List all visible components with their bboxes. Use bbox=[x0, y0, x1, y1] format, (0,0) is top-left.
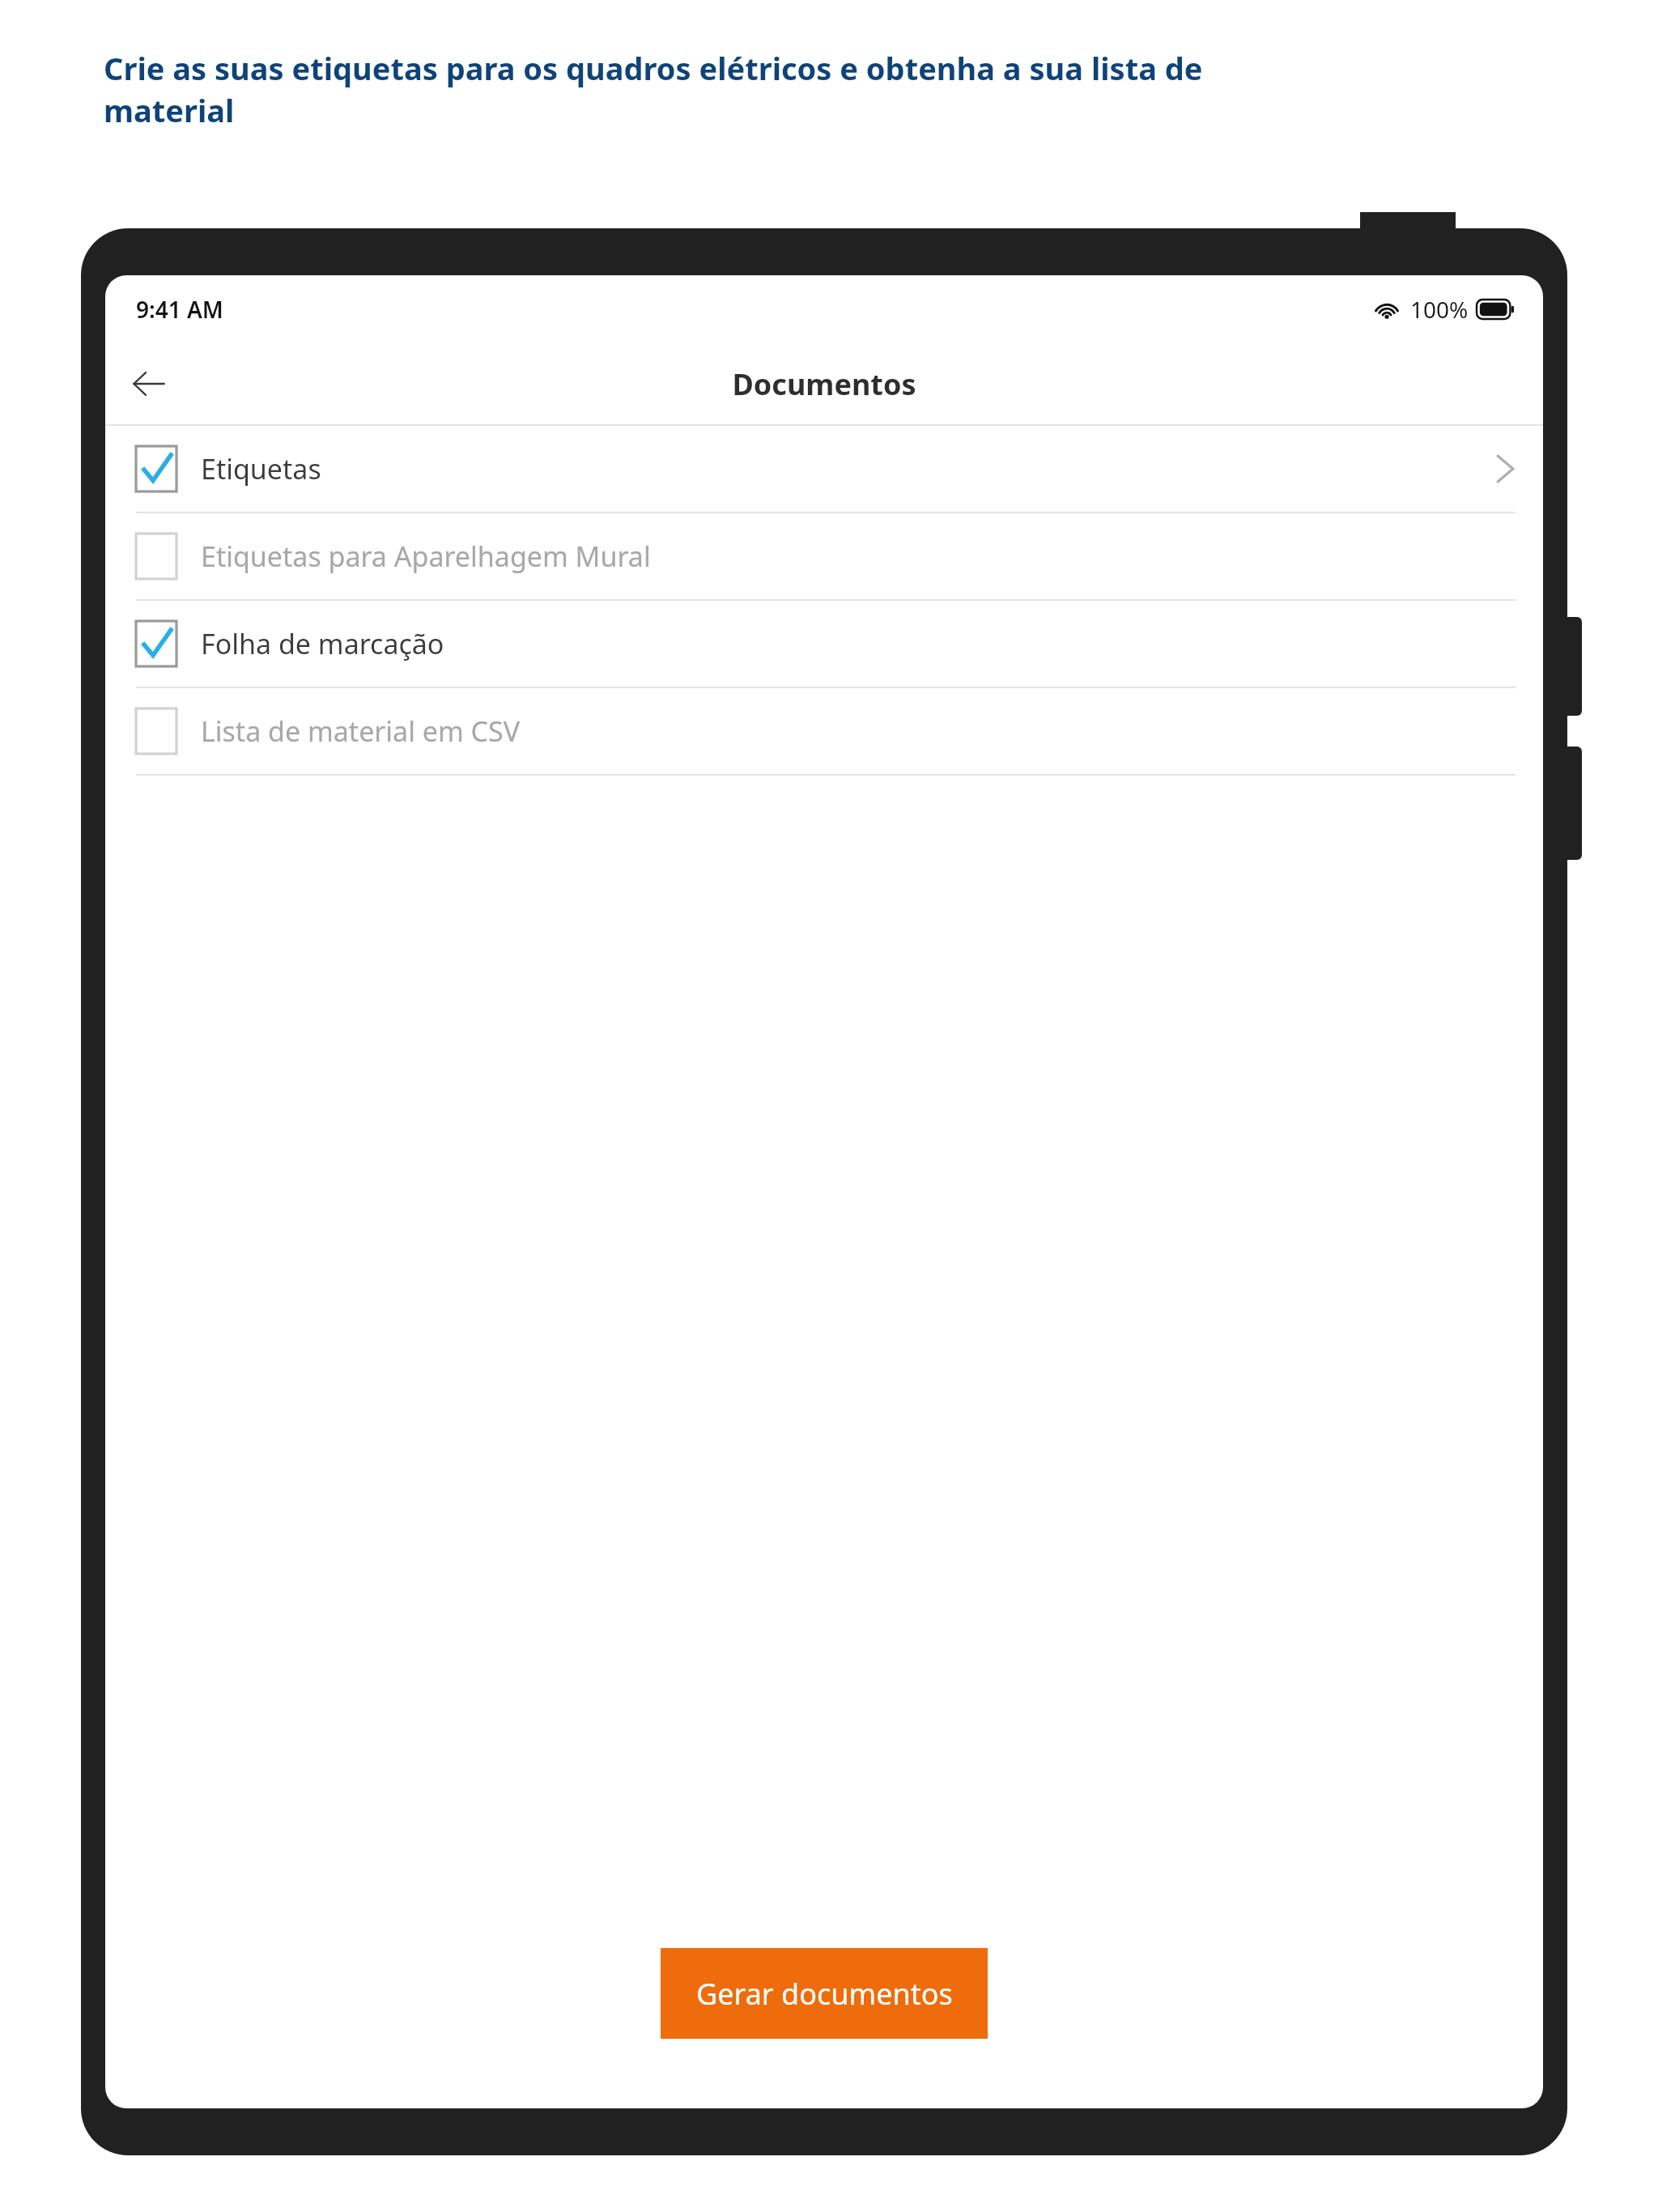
button[interactable]: Folha de marcação bbox=[105, 601, 1543, 688]
staticText: Gerar documentos bbox=[696, 1974, 953, 2014]
button[interactable]: Etiquetas para Aparelhagem Mural bbox=[105, 513, 1543, 601]
staticText: Etiquetas bbox=[201, 450, 321, 487]
staticText: Lista de material em CSV bbox=[201, 713, 521, 750]
button[interactable]: Lista de material em CSV bbox=[105, 688, 1543, 776]
staticText: 100% bbox=[1410, 294, 1469, 325]
staticText: 9:41 AM bbox=[136, 294, 223, 325]
staticText: Documentos bbox=[732, 364, 916, 404]
button[interactable]: Etiquetas bbox=[105, 426, 1543, 513]
staticText: Folha de marcação bbox=[201, 625, 444, 662]
staticText: Etiquetas para Aparelhagem Mural bbox=[201, 538, 651, 575]
staticText: material bbox=[104, 89, 235, 131]
button[interactable]: Back bbox=[117, 352, 180, 415]
button[interactable]: Gerar documentos bbox=[661, 1948, 988, 2039]
staticText: Crie as suas etiquetas para os quadros e… bbox=[104, 47, 1203, 89]
